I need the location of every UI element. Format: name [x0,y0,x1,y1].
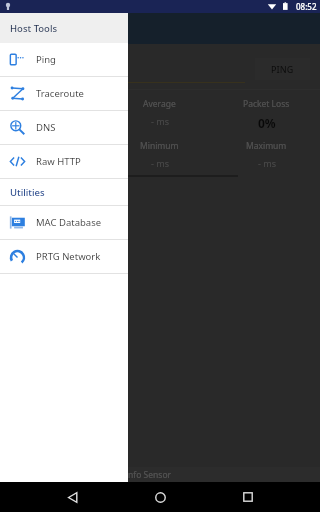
button[interactable]: DNS [0,111,128,144]
button[interactable]: PRTG Network Monitor [0,240,128,273]
button[interactable]: Ping [0,43,128,76]
button[interactable]: Raw HTTP [0,145,128,178]
staticText: Sensor of the Week: SSH Meminfo Sensor [6,469,172,481]
button[interactable]: Recent apps [233,482,263,512]
staticText: Packet Loss [243,98,290,110]
button[interactable]: Back [58,482,88,512]
staticText: Sent [44,140,62,152]
staticText: 0% [258,115,276,131]
button[interactable]: Home [145,482,175,512]
staticText: DNS [36,121,56,134]
staticText: - ms [258,157,276,169]
staticText: Maximum [246,140,287,152]
staticText: Raw HTTP [36,155,81,168]
staticText: - ms [44,115,62,127]
button[interactable]: MAC Database [0,206,128,239]
staticText: PING [271,63,294,75]
staticText: - ms [151,157,169,169]
button[interactable]: Traceroute [0,77,128,110]
staticText: www.example.com [10,62,99,76]
staticText: Utilities [10,186,45,199]
staticText: Ping [36,53,56,66]
staticText: 0 [50,157,56,169]
staticText: 08:52 [296,1,317,12]
button[interactable]: PING [255,58,310,80]
staticText: Traceroute [36,87,84,100]
staticText: PRTG Network Monitor [36,250,128,263]
staticText: Host Tools [10,22,58,35]
staticText: Minimum [140,140,179,152]
staticText: Average [143,98,176,110]
staticText: - ms [151,115,169,127]
staticText: MAC Database [36,216,102,229]
